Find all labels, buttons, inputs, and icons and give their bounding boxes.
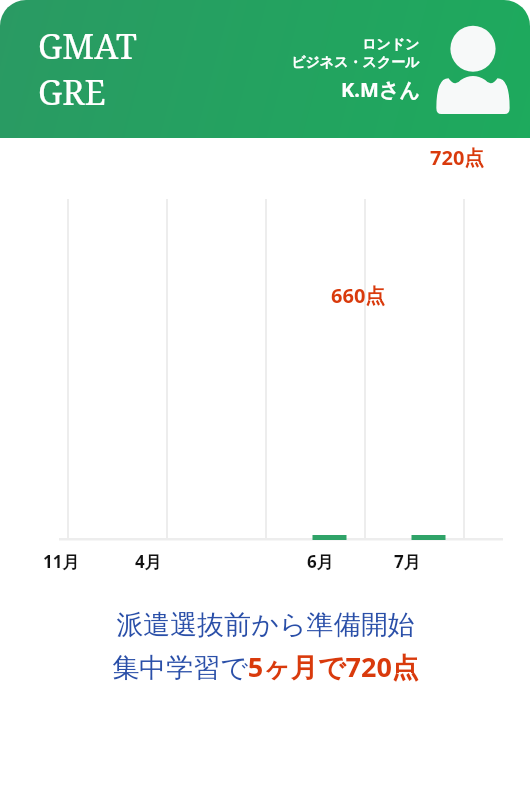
- staticText: 11月: [43, 550, 80, 573]
- staticText: 6月: [307, 550, 334, 573]
- button[interactable]: GMAT: [0, 0, 530, 138]
- staticText: ビジネス・スクール: [291, 54, 420, 72]
- staticText: 派遣選抜前から準備開始: [116, 608, 415, 642]
- staticText: 7月: [394, 550, 421, 573]
- staticText: 720点: [430, 144, 485, 171]
- staticText: 660点: [331, 282, 386, 309]
- staticText: ロンドン: [362, 36, 420, 54]
- staticText: 4月: [135, 550, 162, 573]
- staticText: GRE: [38, 69, 106, 115]
- staticText: 集中学習で5ヶ月で720点: [112, 648, 419, 685]
- staticText: K.Mさん: [341, 76, 420, 103]
- button[interactable]: User avatar: [434, 23, 512, 115]
- staticText: GMAT: [38, 23, 137, 69]
